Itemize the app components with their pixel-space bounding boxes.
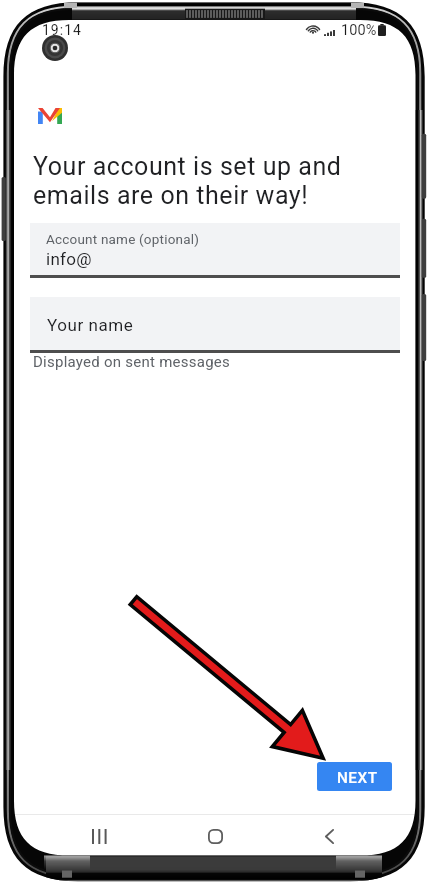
staticText: Your name [47,315,134,335]
staticText: 100% [341,22,377,39]
button[interactable]: NEXT [317,762,392,791]
staticText: info@ [46,249,92,269]
staticText: Displayed on sent messages [33,353,231,371]
staticText: Your account is set up and emails are on… [33,152,342,210]
button[interactable]: Back [291,816,367,856]
button[interactable]: Your name [30,297,400,353]
staticText: Account name (optional) [46,231,200,247]
button[interactable]: Account name (optional) [30,223,400,277]
staticText: NEXT [337,769,378,787]
staticText: 19:14 [42,22,82,38]
button[interactable]: Home [177,816,253,856]
button[interactable]: Recent apps [61,816,137,856]
